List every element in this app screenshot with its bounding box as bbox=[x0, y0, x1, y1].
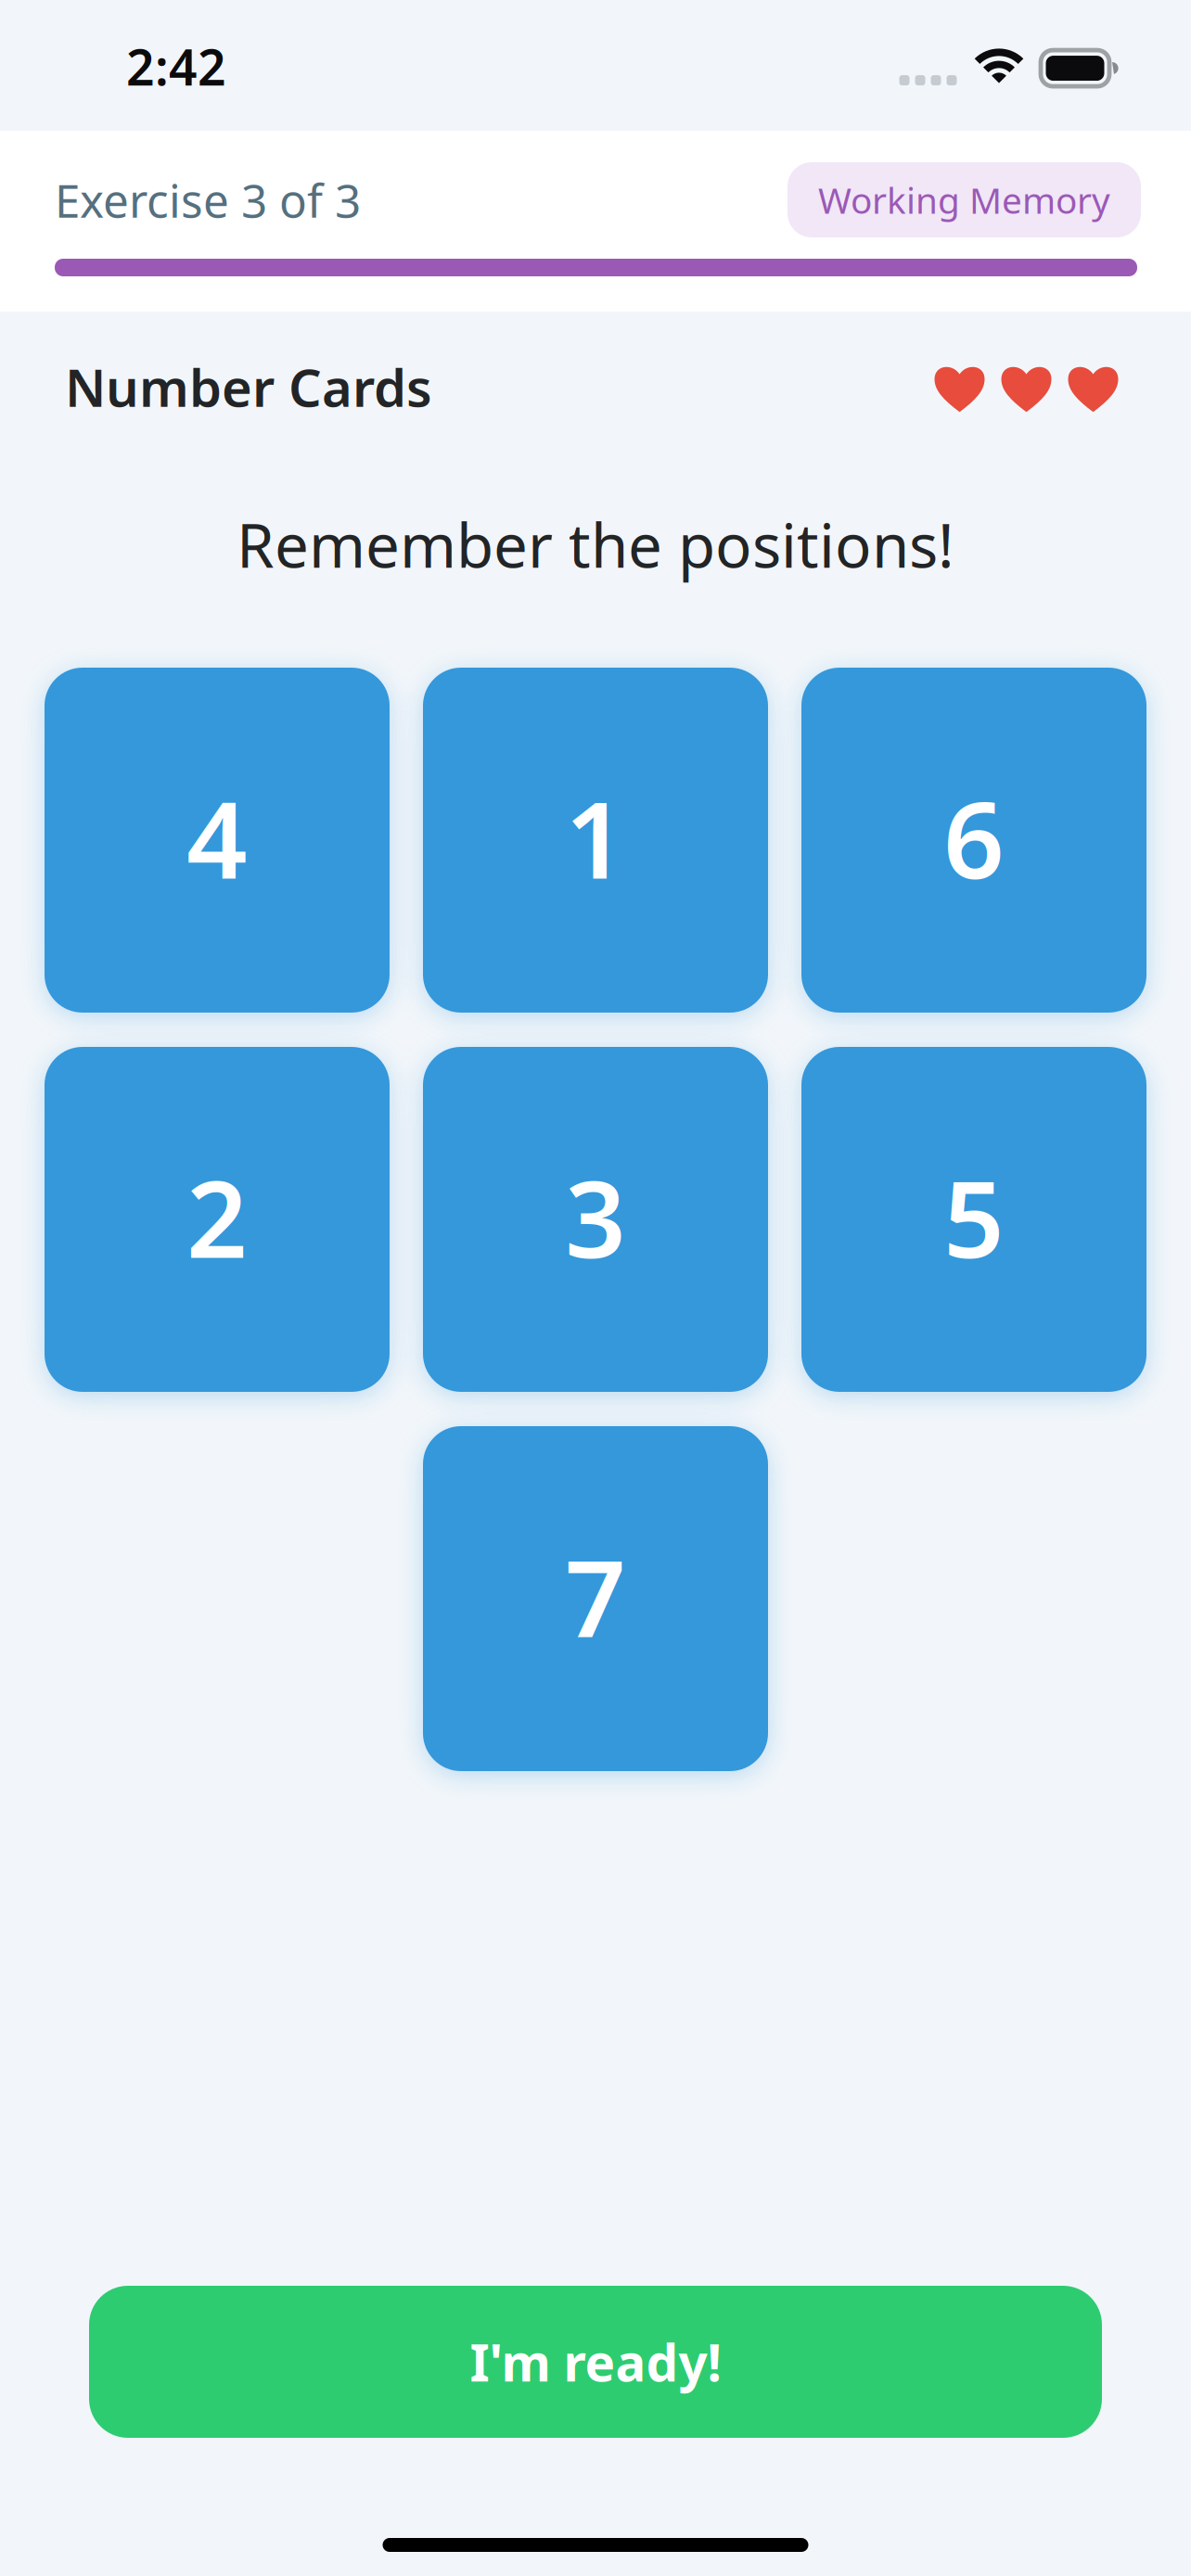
staticText: Exercise 3 of 3 bbox=[55, 169, 361, 230]
staticText: 5 bbox=[943, 1146, 1005, 1287]
button[interactable]: Card 6 bbox=[801, 668, 1146, 1013]
staticText: Number Cards bbox=[65, 352, 432, 421]
button[interactable]: Card 4 bbox=[45, 668, 390, 1013]
staticText: 4 bbox=[186, 767, 248, 908]
button[interactable]: I'm ready! bbox=[89, 2286, 1102, 2438]
button[interactable]: Card 2 bbox=[45, 1047, 390, 1392]
button[interactable]: Card 7 bbox=[423, 1426, 768, 1771]
staticText: 3 bbox=[565, 1146, 626, 1287]
staticText: Remember the positions! bbox=[237, 504, 954, 585]
staticText: 2 bbox=[186, 1146, 248, 1287]
staticText: 6 bbox=[943, 767, 1005, 908]
button[interactable]: Card 1 bbox=[423, 668, 768, 1013]
staticText: 1 bbox=[565, 767, 626, 908]
staticText: Working Memory bbox=[818, 176, 1110, 224]
staticText: 2:42 bbox=[126, 33, 226, 99]
staticText: 7 bbox=[565, 1525, 626, 1667]
button[interactable]: Card 3 bbox=[423, 1047, 768, 1392]
staticText: I'm ready! bbox=[470, 2328, 721, 2395]
button[interactable]: Card 5 bbox=[801, 1047, 1146, 1392]
